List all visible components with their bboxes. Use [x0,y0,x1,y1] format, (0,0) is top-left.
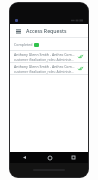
staticText: customer ifiealization_roles: Administra… [14,58,75,62]
staticText: Anthony Glenn Smith - Anthro Company [14,52,75,57]
staticText: Access Requests [26,27,67,34]
staticText: Completed [14,42,33,47]
button[interactable]: Anthony Glenn Smith - Anthro Company [10,51,88,62]
button[interactable]: Open navigation menu [14,27,22,35]
button[interactable]: Recent apps [69,153,78,162]
staticText: Anthony Glenn Smith - Anthro Company [14,64,75,69]
button[interactable]: Home [45,153,54,162]
button[interactable]: Back [20,153,29,162]
other: Completed [77,53,84,60]
other: Completed [77,65,84,72]
staticText: customer ifiealization_roles: Administra… [14,70,75,74]
button[interactable]: Anthony Glenn Smith - Anthro Company [10,63,88,74]
